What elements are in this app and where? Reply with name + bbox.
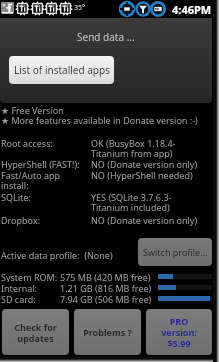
staticText: NO (Donate version only)	[91, 214, 198, 226]
other: Download	[136, 2, 150, 16]
staticText: SD card:	[1, 293, 36, 304]
other: USB connected	[120, 2, 134, 16]
staticText: OK (BusyBox 1.18.4- Titanium from app)	[91, 137, 176, 159]
staticText: 4:46PM	[172, 2, 212, 17]
staticText: Active data profile: (None)	[1, 249, 113, 261]
staticText: Dropbox:	[1, 214, 41, 226]
staticText: 575 MB (420 MB free)	[60, 271, 151, 282]
staticText: 1.21 GB (816 MB free)	[60, 282, 152, 293]
staticText: Problems ?	[83, 326, 132, 338]
staticText: Switch profile...	[143, 246, 208, 258]
staticText: NO (HyperShell needed)	[91, 169, 193, 181]
staticText: 7.94 GB (506 MB free)	[60, 293, 152, 304]
button[interactable]: Problems ?	[74, 309, 141, 355]
staticText: 35°	[74, 3, 86, 13]
staticText: HyperShell (FAST!):	[1, 158, 80, 170]
staticText: SQLite:	[1, 191, 31, 203]
staticText: System ROM:	[1, 271, 58, 282]
staticText: ★ More features available in Donate vers…	[1, 114, 198, 126]
staticText: NO (Donate version only)	[91, 158, 198, 170]
staticText: Internal:	[1, 282, 38, 293]
staticText: YES (SQLite 3.7.6.3- Titanium included)	[91, 191, 172, 213]
staticText: Check for updates	[14, 321, 57, 344]
button[interactable]: Switch profile...	[138, 238, 212, 266]
staticText: PRO version: $5.99	[161, 315, 197, 349]
staticText: List of installed apps	[14, 63, 110, 77]
staticText: Send data ...	[77, 30, 135, 44]
button[interactable]: PRO version: $5.99	[146, 309, 212, 355]
staticText: Root access:	[1, 137, 53, 149]
staticText: Fast/Auto app install:	[1, 169, 61, 191]
other: Battery	[151, 2, 165, 16]
button[interactable]: List of installed apps	[9, 56, 114, 84]
staticText: ★ Free Version	[1, 104, 64, 116]
button[interactable]: Check for updates	[2, 309, 69, 355]
